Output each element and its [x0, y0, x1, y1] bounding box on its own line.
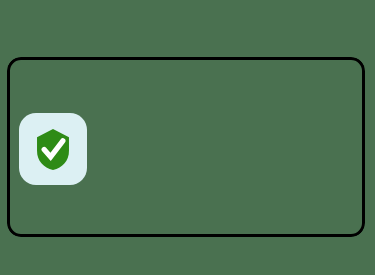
- button[interactable]: Protected: [7, 57, 365, 237]
- button[interactable]: Protected: [19, 113, 87, 185]
